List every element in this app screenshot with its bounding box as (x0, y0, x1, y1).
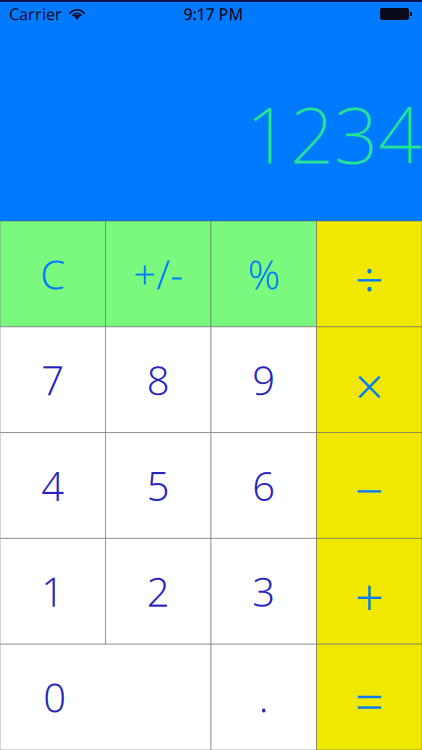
button[interactable]: 9 (211, 327, 316, 433)
button[interactable]: ÷ (316, 221, 422, 327)
button[interactable]: 4 (0, 433, 105, 538)
staticText: 3 (252, 565, 275, 618)
staticText: = (355, 667, 384, 735)
staticText: +/- (133, 247, 183, 300)
staticText: % (248, 247, 280, 300)
button[interactable]: − (316, 433, 422, 538)
button[interactable]: × (316, 327, 422, 433)
button[interactable]: 5 (105, 433, 211, 538)
button[interactable]: . (211, 644, 316, 750)
staticText: . (259, 670, 269, 724)
staticText: 7 (41, 353, 64, 406)
staticText: Carrier (9, 3, 62, 25)
button[interactable]: 8 (105, 327, 211, 433)
button[interactable]: = (316, 644, 422, 750)
button[interactable]: +/- (105, 221, 211, 327)
button[interactable]: + (316, 538, 422, 644)
staticText: 1 (41, 565, 64, 618)
button[interactable]: 0 (0, 644, 211, 750)
staticText: 9:17 PM (183, 3, 243, 25)
staticText: 2 (147, 565, 170, 618)
button[interactable]: 3 (211, 538, 316, 644)
staticText: 4 (41, 459, 64, 512)
staticText: − (355, 456, 384, 523)
button[interactable]: 2 (105, 538, 211, 644)
button[interactable]: % (211, 221, 316, 327)
staticText: 5 (147, 459, 170, 512)
staticText: 9 (252, 353, 275, 406)
button[interactable]: C (0, 221, 105, 327)
button[interactable]: 7 (0, 327, 105, 433)
staticText: ÷ (355, 245, 384, 313)
staticText: C (40, 247, 65, 300)
staticText: 1234 (246, 82, 422, 185)
staticText: × (355, 352, 384, 419)
staticText: 8 (147, 353, 170, 406)
button[interactable]: 6 (211, 433, 316, 538)
staticText: + (355, 563, 384, 630)
staticText: 0 (43, 670, 66, 724)
staticText: 6 (252, 459, 275, 512)
button[interactable]: 1 (0, 538, 105, 644)
